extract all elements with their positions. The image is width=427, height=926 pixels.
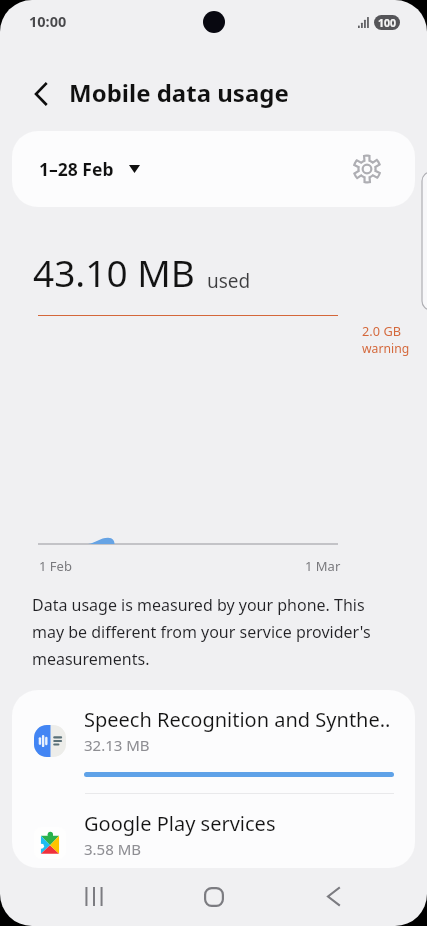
button[interactable]: Back bbox=[305, 868, 362, 925]
staticText: used bbox=[207, 268, 251, 294]
staticText: warning bbox=[362, 340, 410, 357]
staticText: 2.0 GB bbox=[362, 322, 402, 339]
staticText: Google Play services bbox=[84, 810, 276, 837]
button[interactable]: 1–28 Feb bbox=[12, 147, 152, 191]
staticText: 43.10 MB bbox=[33, 247, 195, 297]
staticText: 1 Feb bbox=[39, 557, 72, 575]
button[interactable]: Google Play services bbox=[12, 794, 415, 868]
staticText: Mobile data usage bbox=[69, 76, 289, 109]
button[interactable]: Recent apps bbox=[65, 868, 122, 925]
staticText: Data usage is measured by your phone. Th… bbox=[32, 594, 373, 670]
staticText: 1–28 Feb bbox=[39, 157, 114, 181]
button[interactable]: Speech Recognition and Synthe.. bbox=[12, 690, 415, 793]
button[interactable]: Settings bbox=[347, 149, 387, 189]
staticText: 32.13 MB bbox=[84, 735, 150, 755]
staticText: 10:00 bbox=[29, 11, 67, 31]
staticText: 1 Mar bbox=[305, 557, 341, 575]
staticText: Speech Recognition and Synthe.. bbox=[84, 706, 391, 733]
button[interactable]: Back bbox=[22, 74, 62, 114]
button[interactable]: Home bbox=[185, 868, 242, 925]
staticText: 100 bbox=[378, 16, 397, 30]
staticText: 3.58 MB bbox=[84, 839, 142, 859]
